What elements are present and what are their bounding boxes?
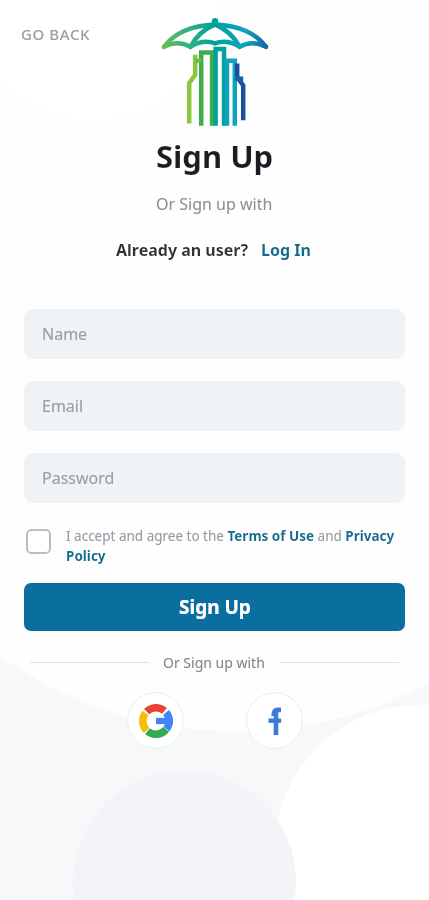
button[interactable]: Accept terms checkbox [24,527,52,555]
staticText: Name [42,323,88,345]
staticText: Password [42,467,115,489]
button[interactable]: Sign Up [24,583,405,631]
button[interactable]: Sign up with Google [127,692,184,749]
button[interactable]: Sign up with Facebook [246,692,303,749]
staticText: Or Sign up with [156,193,273,215]
staticText: Sign Up [156,135,274,177]
staticText: Or Sign up with [163,653,265,672]
staticText: Sign Up [179,594,251,620]
other: App logo [155,16,275,128]
button[interactable]: Password [24,453,405,503]
staticText: Email [42,395,84,417]
button[interactable]: GO BACK [10,18,102,50]
button[interactable]: I accept and agree to the Terms of Use a… [66,527,405,565]
button[interactable]: Log In [259,237,313,263]
staticText: GO BACK [21,24,91,44]
button[interactable]: Email [24,381,405,431]
button[interactable]: Name [24,309,405,359]
staticText: Already an user? [116,239,249,261]
staticText: Log In [261,239,311,261]
